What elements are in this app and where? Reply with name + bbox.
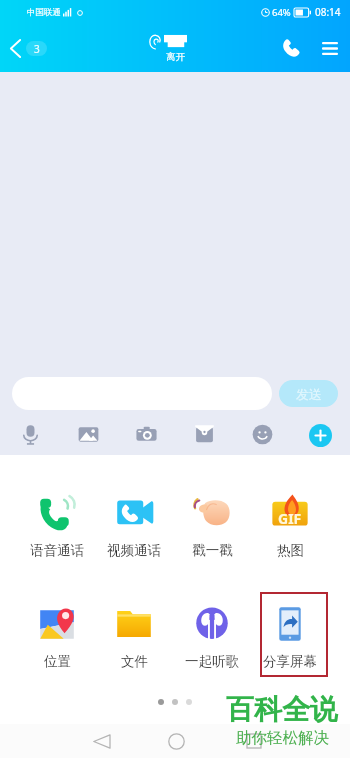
staticText: 离开 <box>166 51 185 63</box>
button[interactable]: Message input <box>12 377 272 410</box>
button[interactable]: Camera <box>130 418 162 450</box>
button[interactable]: 文件 <box>100 596 168 672</box>
button[interactable]: 视频通话 <box>100 485 168 561</box>
button[interactable]: Recents <box>237 724 271 758</box>
button[interactable]: Call <box>272 26 310 70</box>
staticText: 助你轻松解决 <box>236 728 329 748</box>
staticText: 一起听歌 <box>185 653 239 670</box>
staticText: 文件 <box>121 653 148 670</box>
button[interactable]: Menu <box>310 26 350 70</box>
staticText: 分享屏幕 <box>263 653 317 670</box>
staticText: 3 <box>34 42 40 56</box>
button[interactable]: Voice <box>14 418 46 450</box>
button[interactable]: Photo <box>72 418 104 450</box>
staticText: GIF <box>278 509 302 528</box>
button[interactable]: More <box>304 419 336 451</box>
button[interactable]: 一起听歌 <box>178 596 246 672</box>
button[interactable]: Back <box>84 724 118 758</box>
staticText: 中国联通 <box>27 7 61 18</box>
staticText: 发送 <box>296 386 322 402</box>
staticText: 64% <box>272 6 291 19</box>
button[interactable]: 发送 <box>279 380 338 407</box>
button[interactable]: 戳一戳 <box>178 485 246 561</box>
button[interactable]: 分享屏幕 <box>256 596 324 672</box>
staticText: 视频通话 <box>107 542 161 559</box>
button[interactable]: 位置 <box>23 596 91 672</box>
button[interactable]: Red packet <box>188 418 220 450</box>
staticText: 08:14 <box>315 5 341 19</box>
staticText: 热图 <box>277 542 304 559</box>
staticText: 语音通话 <box>30 542 84 559</box>
button[interactable]: Emoji <box>246 418 278 450</box>
button[interactable]: Back <box>0 34 55 63</box>
button[interactable]: Home <box>159 724 193 758</box>
button[interactable]: GIF <box>256 485 324 561</box>
staticText: 位置 <box>44 653 71 670</box>
staticText: 戳一戳 <box>192 542 233 559</box>
staticText: 百科全说 <box>226 692 338 727</box>
button[interactable]: 语音通话 <box>23 485 91 561</box>
